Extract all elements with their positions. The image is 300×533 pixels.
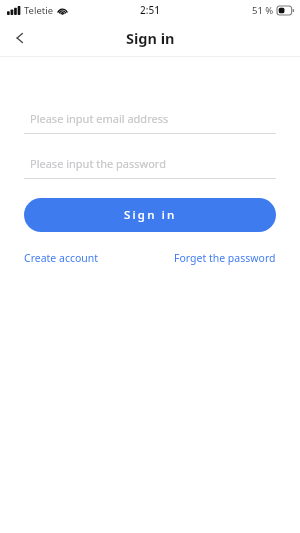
- button[interactable]: Sign in: [24, 198, 276, 232]
- staticText: Sign in: [124, 207, 177, 223]
- staticText: Teletie: [24, 4, 54, 17]
- staticText: Please input email address: [30, 111, 169, 126]
- staticText: Create account: [24, 251, 99, 265]
- button[interactable]: Create account: [24, 251, 99, 265]
- button[interactable]: Forget the password: [174, 251, 276, 265]
- button[interactable]: Back: [0, 20, 40, 56]
- staticText: Please input the password: [30, 156, 166, 171]
- button[interactable]: Please input email address: [24, 107, 276, 134]
- staticText: 2:51: [140, 3, 160, 17]
- staticText: Forget the password: [174, 251, 276, 265]
- staticText: Sign in: [126, 28, 175, 48]
- button[interactable]: Please input the password: [24, 152, 276, 179]
- staticText: 51 %: [252, 4, 274, 17]
